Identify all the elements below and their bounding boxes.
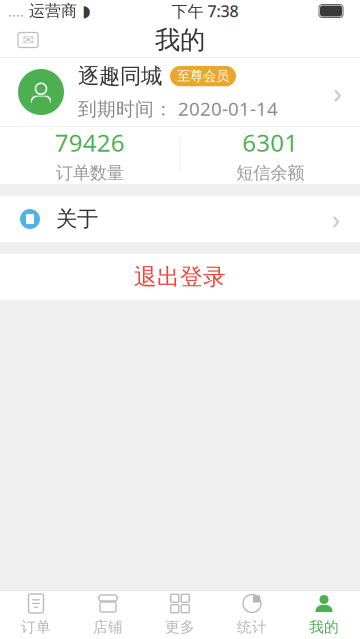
button[interactable]: 79426 <box>0 126 180 184</box>
button[interactable]: 逐趣同城 <box>0 58 360 126</box>
button[interactable]: 我的 <box>288 590 360 639</box>
button[interactable]: Messages <box>8 22 48 57</box>
button[interactable]: 退出登录 <box>0 254 360 300</box>
staticText: › <box>333 72 342 111</box>
staticText: .... <box>8 1 24 21</box>
button[interactable]: 更多 <box>144 590 216 639</box>
staticText: 下午 7:38 <box>171 0 238 22</box>
staticText: 运营商 <box>24 1 82 21</box>
staticText: 关于 <box>56 206 98 232</box>
staticText: 退出登录 <box>134 263 226 291</box>
staticText: 79426 <box>55 126 125 158</box>
button[interactable]: 关于 <box>0 196 360 242</box>
staticText: 短信余额 <box>236 162 304 184</box>
staticText: 我的 <box>309 618 339 636</box>
button[interactable]: 6301 <box>180 126 360 184</box>
button[interactable]: 订单 <box>0 590 72 639</box>
staticText: 统计 <box>237 618 267 636</box>
staticText: 6301 <box>242 126 298 158</box>
staticText: 更多 <box>165 618 195 636</box>
staticText: ✉ <box>22 32 33 47</box>
staticText: 订单数量 <box>56 162 124 184</box>
button[interactable]: 统计 <box>216 590 288 639</box>
staticText: 我的 <box>155 24 205 55</box>
button[interactable]: 店铺 <box>72 590 144 639</box>
staticText: › <box>332 201 340 237</box>
staticText: 订单 <box>21 618 51 636</box>
staticText: 逐趣同城 <box>78 63 162 89</box>
staticText: ◗ <box>82 2 90 20</box>
staticText: 到期时间： 2020-01-14 <box>78 96 278 121</box>
staticText: 店铺 <box>93 618 123 636</box>
staticText: 至尊会员 <box>177 68 229 84</box>
